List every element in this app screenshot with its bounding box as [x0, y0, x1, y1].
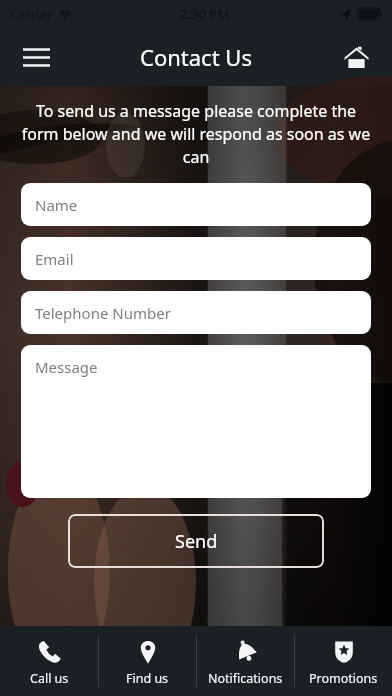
staticText: Find us [126, 670, 169, 687]
staticText: Send [175, 529, 218, 554]
button[interactable]: Name [21, 183, 371, 226]
button[interactable]: Telephone Number [21, 291, 371, 334]
button[interactable]: Menu [14, 35, 58, 79]
staticText: Call us [30, 670, 69, 687]
staticText: Telephone Number [35, 303, 171, 323]
staticText: To send us a message please complete the… [21, 100, 371, 168]
staticText: Promotions [309, 670, 378, 687]
staticText: Message [35, 357, 98, 377]
button[interactable]: Promotions [295, 626, 392, 696]
button[interactable]: Message [21, 345, 371, 498]
button[interactable]: Find us [99, 626, 196, 696]
button[interactable]: Notifications [197, 626, 294, 696]
button[interactable]: Send [68, 514, 324, 568]
staticText: Contact Us [140, 42, 252, 72]
staticText: 2:30 PM [180, 5, 230, 23]
button[interactable]: Call us [0, 626, 98, 696]
button[interactable]: Email [21, 237, 371, 280]
button[interactable]: Home [334, 35, 378, 79]
staticText: Email [35, 249, 74, 269]
staticText: Name [35, 195, 78, 215]
staticText: Notifications [208, 670, 283, 687]
staticText: Carrier [10, 5, 53, 23]
